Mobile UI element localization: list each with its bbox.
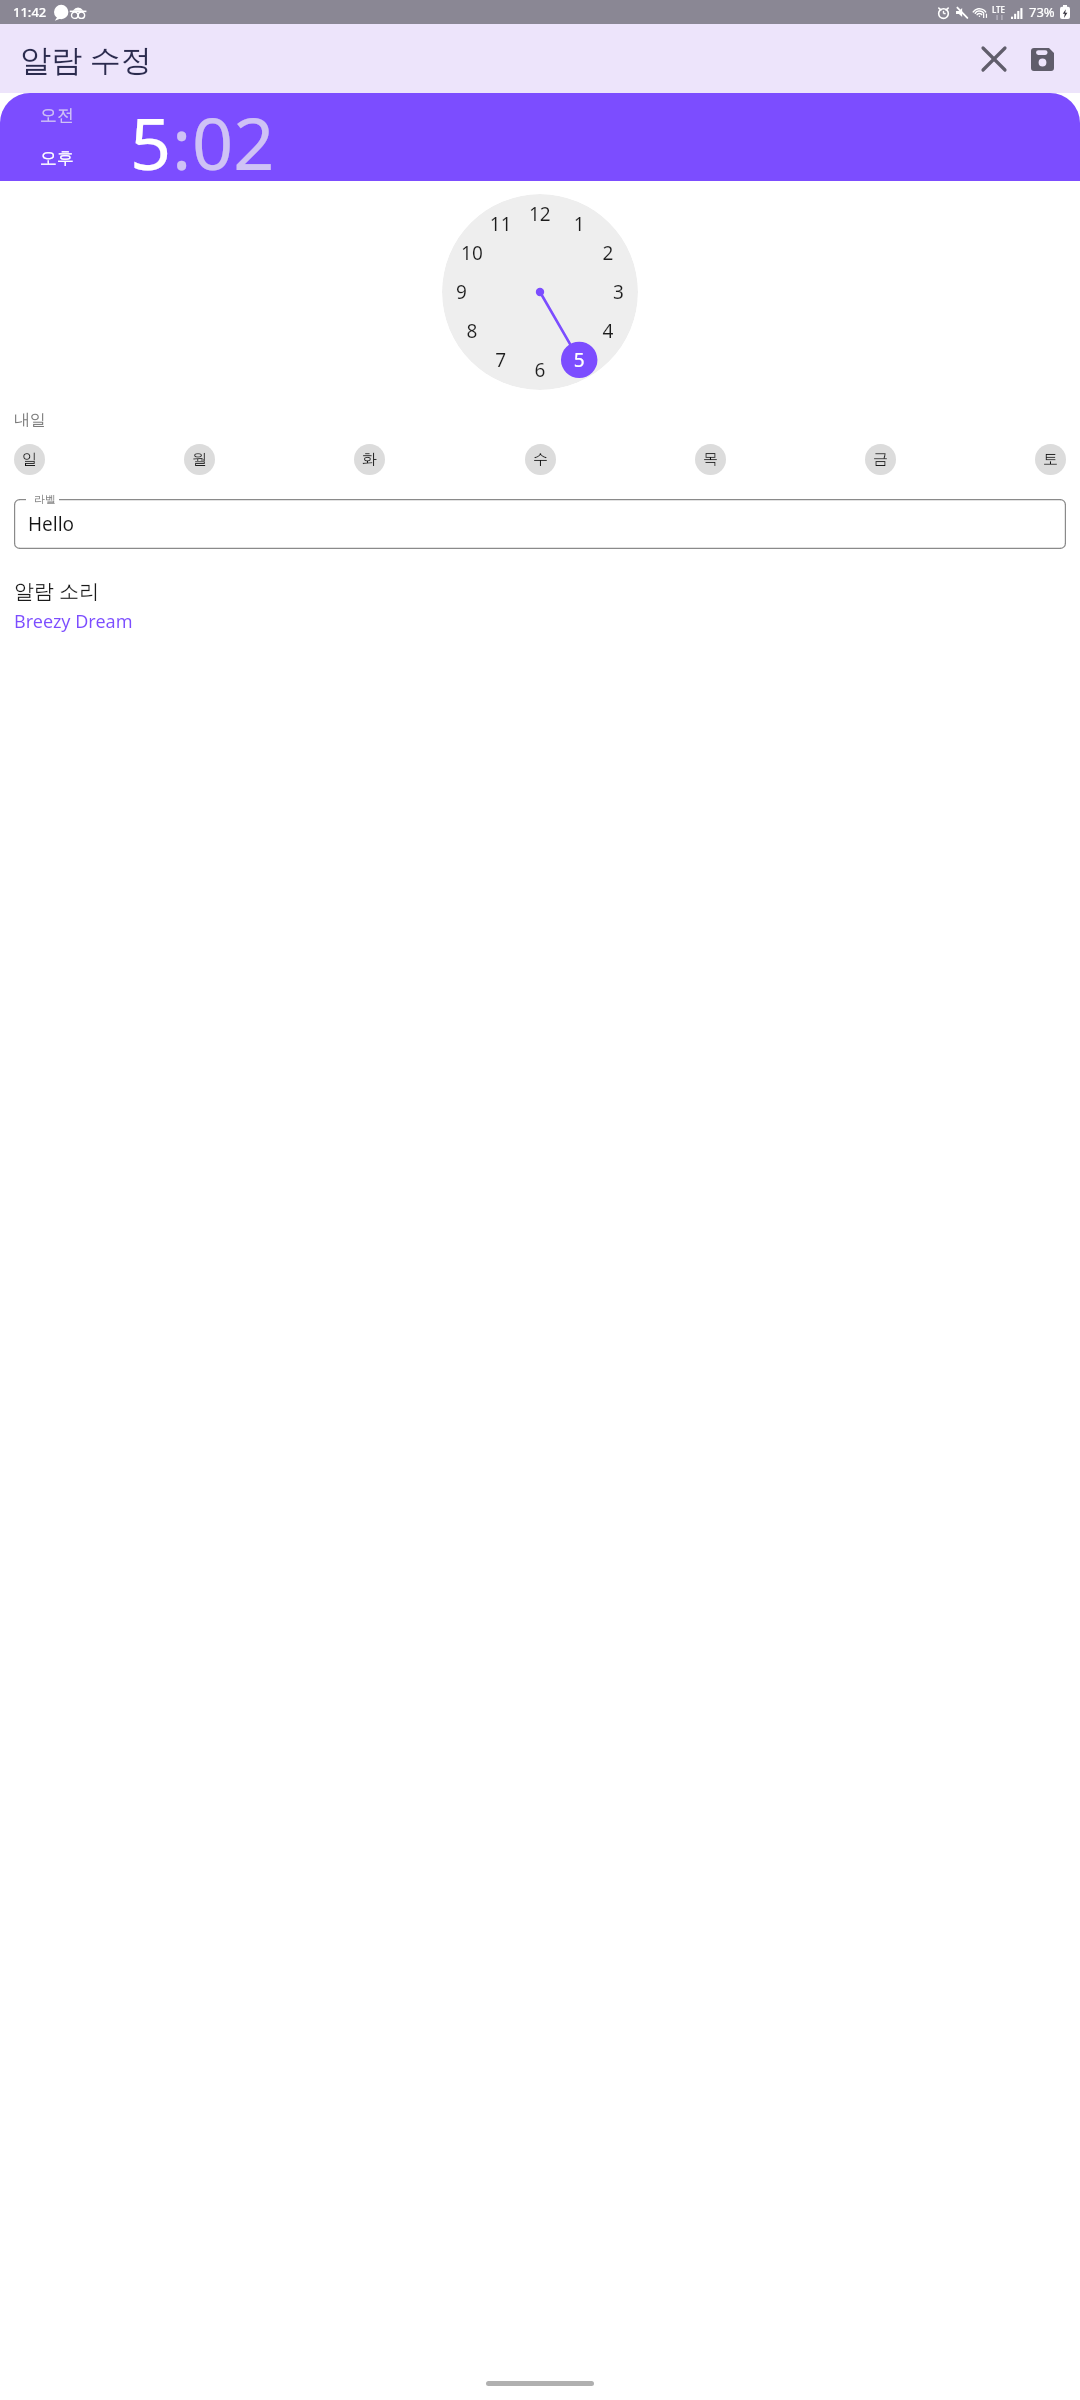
button[interactable]: 목 [695,444,726,475]
button[interactable]: 5 [130,93,172,181]
staticText: 토 [1043,450,1058,469]
staticText: 73% [1029,3,1055,21]
staticText: 수 [533,450,548,469]
button[interactable]: Hello [14,499,1066,549]
button[interactable]: 02 [192,93,275,181]
button[interactable]: 화 [354,444,385,475]
button[interactable]: 수 [525,444,556,475]
staticText: 월 [192,450,207,469]
staticText: 02 [192,93,275,181]
staticText: 라벨 [34,492,56,506]
button[interactable]: 토 [1035,444,1066,475]
staticText: 목 [703,450,718,469]
button[interactable]: 월 [184,444,215,475]
staticText: Breezy Dream [14,609,133,634]
staticText: 알람 수정 [20,38,153,80]
staticText: 내일 [14,410,46,430]
button[interactable]: Save [1018,35,1066,83]
button[interactable]: 오전 [38,104,76,127]
staticText: 11:42 [13,3,47,21]
staticText: 일 [22,450,37,469]
staticText: 오후 [40,148,74,169]
button[interactable]: 알람 소리 [0,575,1080,640]
staticText: 화 [362,450,377,469]
staticText: 알람 소리 [14,577,100,604]
staticText: LTE [992,4,1006,15]
staticText: : [172,93,192,181]
button[interactable]: Hour picker [442,194,638,390]
button[interactable]: Close [970,35,1018,83]
staticText: Hello [28,511,75,537]
button[interactable]: 금 [865,444,896,475]
staticText: 5 [130,93,172,181]
staticText: 오전 [40,105,74,126]
button[interactable]: 일 [14,444,45,475]
staticText: 금 [873,450,888,469]
button[interactable]: 오후 [38,147,76,170]
